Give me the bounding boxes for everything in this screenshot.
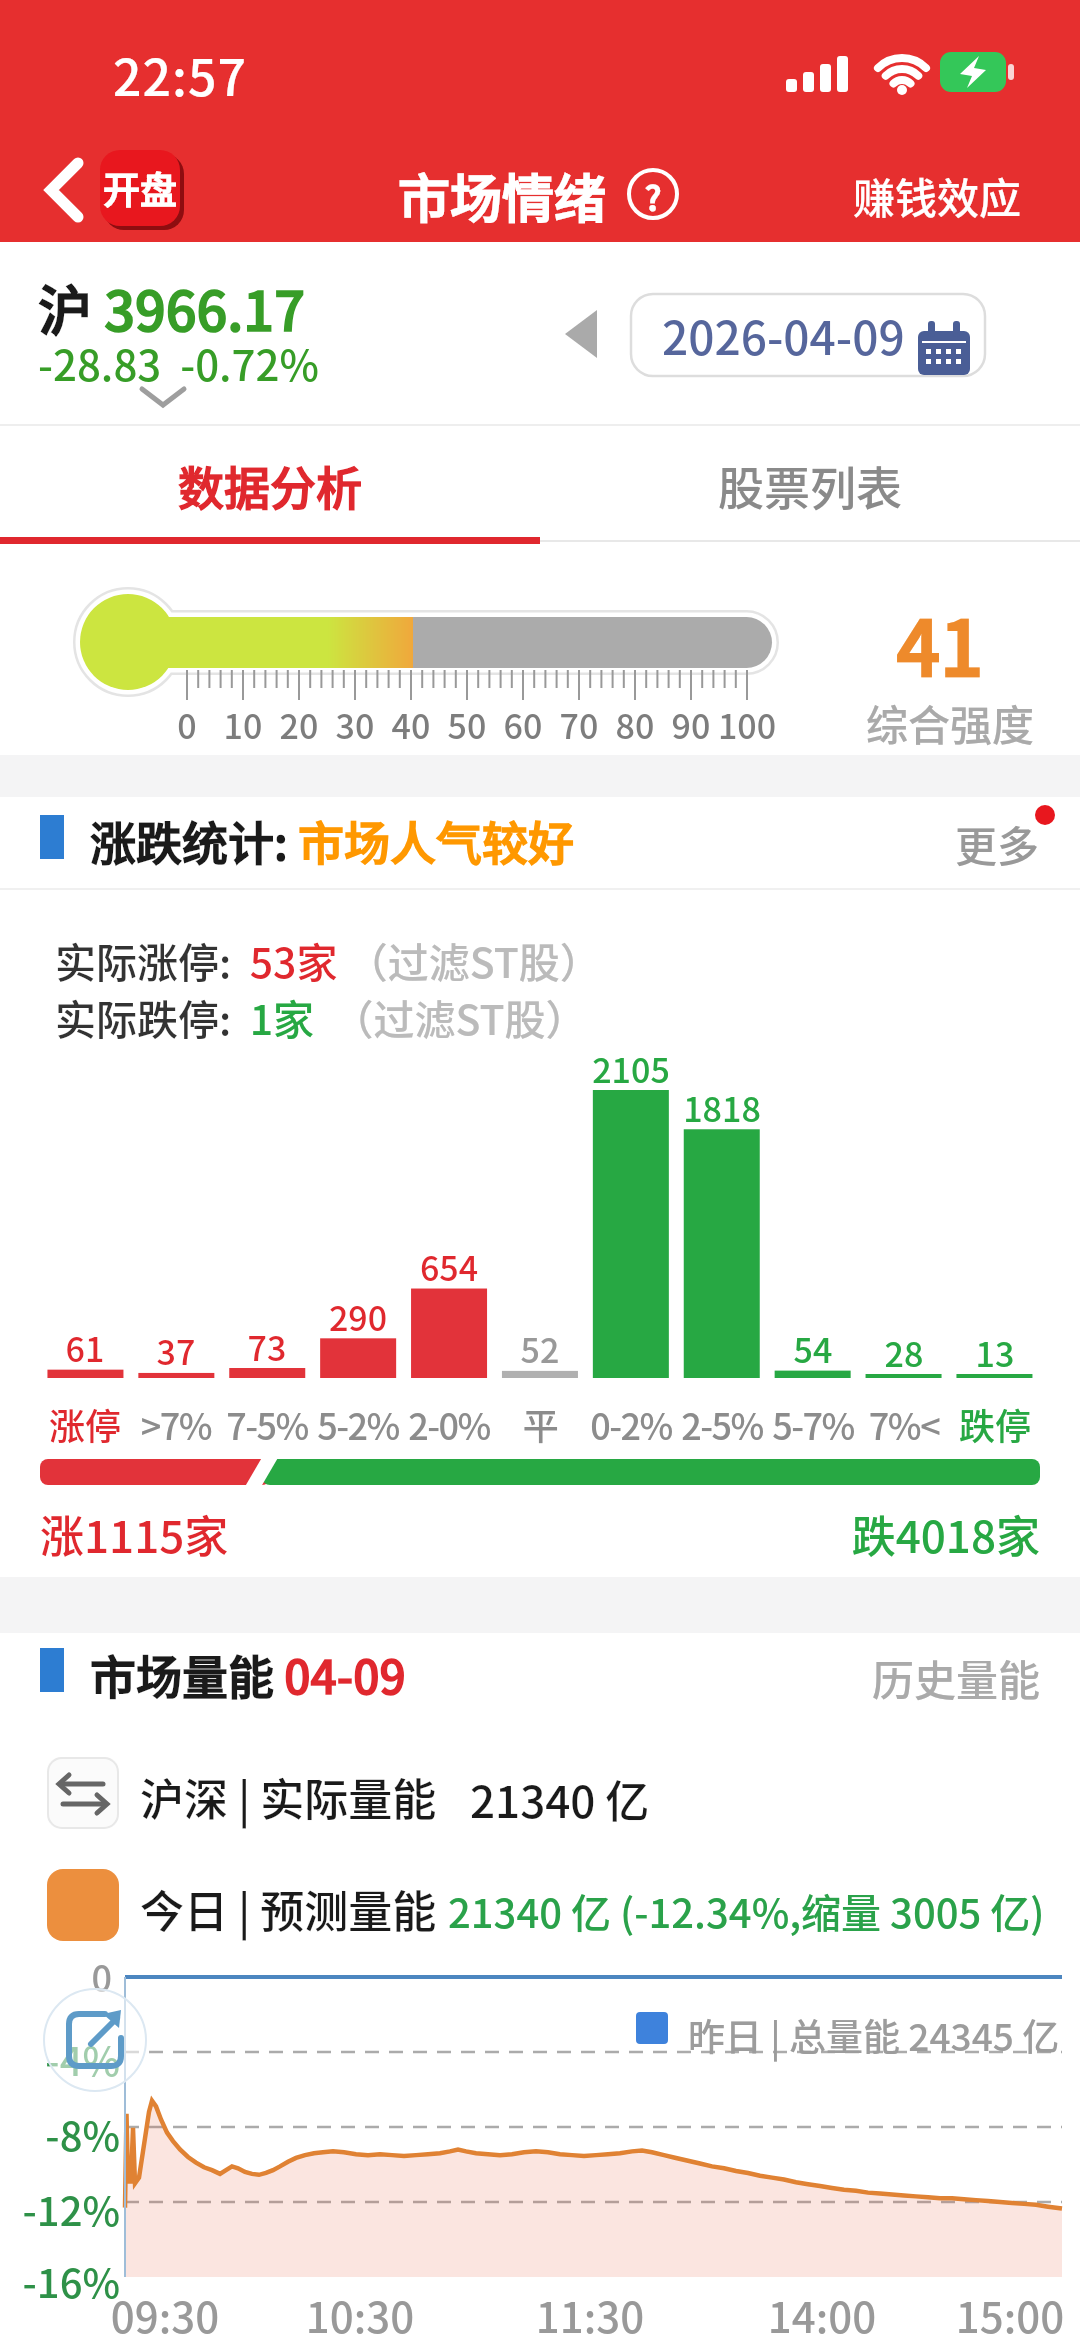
staticText: 沪深 | 实际量能 bbox=[140, 1765, 437, 1829]
staticText: 2105 bbox=[571, 1044, 691, 1093]
staticText: 涨停 bbox=[25, 1398, 145, 1450]
staticText: 沪 3966.17 bbox=[38, 268, 305, 346]
staticText: 654 bbox=[389, 1242, 509, 1291]
staticText: 1818 bbox=[662, 1083, 782, 1132]
staticText: 20 bbox=[259, 700, 339, 749]
staticText: 90 bbox=[651, 700, 731, 749]
staticText: 80 bbox=[595, 700, 675, 749]
staticText: 跌停 bbox=[935, 1398, 1055, 1450]
staticText: 今日 | 预测量能 bbox=[140, 1877, 437, 1941]
staticText: 50 bbox=[427, 700, 507, 749]
button[interactable]: 开盘 bbox=[100, 150, 180, 226]
staticText: 昨日 | 总量能 24345 亿 bbox=[688, 2008, 1060, 2062]
button[interactable] bbox=[626, 167, 680, 221]
staticText: 平 bbox=[480, 1398, 600, 1450]
button[interactable] bbox=[42, 158, 86, 222]
staticText: 21340 亿 bbox=[470, 1767, 650, 1831]
staticText: 历史量能 bbox=[872, 1647, 1041, 1708]
staticText: 跌4018家 bbox=[840, 1502, 1040, 1566]
button[interactable]: 市场量能 04-09 bbox=[0, 1633, 1080, 1723]
button[interactable]: 股票列表 bbox=[540, 426, 1080, 544]
staticText: 股票列表 bbox=[718, 452, 902, 519]
staticText: ? bbox=[626, 172, 680, 221]
staticText: 30 bbox=[315, 700, 395, 749]
staticText: 实际涨停: 53家 （过滤ST股） bbox=[55, 930, 601, 989]
staticText: 61 bbox=[25, 1323, 145, 1372]
staticText: 更多 bbox=[955, 813, 1040, 874]
staticText: 10:30 bbox=[300, 2284, 420, 2337]
staticText: 5-7% bbox=[753, 1398, 873, 1450]
staticText: 52 bbox=[480, 1324, 600, 1373]
button[interactable] bbox=[43, 1988, 147, 2092]
staticText: 41 bbox=[850, 588, 1030, 698]
staticText: 5-2% bbox=[298, 1398, 418, 1450]
staticText: 70 bbox=[539, 700, 619, 749]
button[interactable] bbox=[563, 310, 599, 358]
staticText: 综合强度 bbox=[860, 692, 1040, 753]
staticText: 2-5% bbox=[662, 1398, 782, 1450]
staticText: -8% bbox=[30, 2105, 120, 2163]
staticText: 开盘 bbox=[103, 161, 177, 215]
staticText: 37 bbox=[116, 1326, 236, 1375]
staticText: 15:00 bbox=[950, 2284, 1070, 2337]
staticText: 11:30 bbox=[530, 2284, 650, 2337]
staticText: 2-0% bbox=[389, 1398, 509, 1450]
staticText: 0-2% bbox=[571, 1398, 691, 1450]
staticText: 2026-04-09 bbox=[662, 302, 905, 369]
staticText: -16% bbox=[18, 2252, 120, 2310]
staticText: 09:30 bbox=[105, 2284, 225, 2337]
staticText: -12% bbox=[18, 2180, 120, 2238]
staticText: 22:57 bbox=[113, 38, 247, 110]
staticText: 28 bbox=[844, 1328, 964, 1377]
staticText: 数据分析 bbox=[178, 452, 362, 519]
staticText: 13 bbox=[935, 1328, 1055, 1377]
staticText: 涨1115家 bbox=[40, 1502, 229, 1566]
staticText: 100 bbox=[707, 700, 787, 749]
staticText: 54 bbox=[753, 1324, 873, 1373]
staticText: 市场情绪 bbox=[0, 158, 1004, 233]
staticText: 290 bbox=[298, 1292, 418, 1341]
staticText: 10 bbox=[203, 700, 283, 749]
button[interactable]: 涨跌统计: 市场人气较好 bbox=[0, 797, 1080, 889]
staticText: 实际跌停: 1家 （过滤ST股） bbox=[55, 987, 587, 1046]
staticText: 14:00 bbox=[762, 2284, 882, 2337]
staticText: 0 bbox=[88, 1950, 112, 2002]
staticText: -28.83 -0.72% bbox=[38, 332, 319, 393]
staticText: 涨跌统计: 市场人气较好 bbox=[90, 807, 575, 874]
staticText: 市场量能 04-09 bbox=[90, 1641, 406, 1708]
staticText: 7%< bbox=[844, 1398, 964, 1450]
button[interactable]: 数据分析 bbox=[0, 426, 540, 544]
staticText: 赚钱效应 bbox=[853, 165, 1033, 226]
staticText: 73 bbox=[207, 1322, 327, 1371]
staticText: 7-5% bbox=[207, 1398, 327, 1450]
staticText: 21340 亿 (-12.34%,缩量 3005 亿) bbox=[448, 1882, 1045, 1940]
staticText: 40 bbox=[371, 700, 451, 749]
staticText: 60 bbox=[483, 700, 563, 749]
staticText: 0 bbox=[147, 700, 227, 749]
staticText: -4% bbox=[30, 2030, 120, 2088]
button[interactable]: 2026-04-09 bbox=[630, 293, 986, 377]
staticText: >7% bbox=[116, 1398, 236, 1450]
